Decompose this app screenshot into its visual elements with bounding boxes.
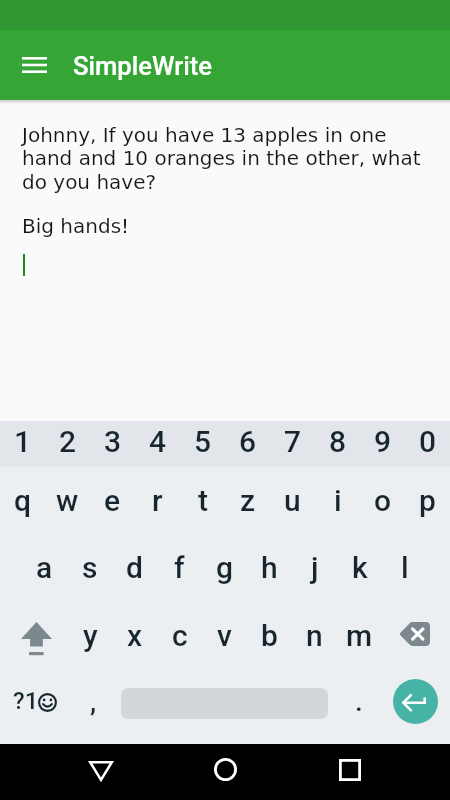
staticText: 9 (374, 424, 392, 459)
staticText: l (401, 550, 409, 585)
staticText: x (127, 618, 143, 653)
staticText: q (14, 483, 31, 518)
staticText: . (355, 685, 363, 718)
button[interactable]: b (247, 603, 292, 671)
staticText: u (284, 483, 301, 518)
button[interactable]: q (0, 467, 45, 535)
button[interactable]: k (337, 535, 382, 603)
staticText: , (90, 685, 97, 718)
staticText: Big hands! (22, 214, 130, 237)
button[interactable]: i (315, 467, 360, 535)
staticText: Johnny, If you have 13 apples in one han… (22, 123, 422, 194)
staticText: 6 (239, 424, 257, 459)
button[interactable]: 9 (360, 421, 405, 467)
button[interactable]: e (90, 467, 135, 535)
button[interactable]: 5 (180, 421, 225, 467)
staticText: 2 (59, 424, 77, 459)
button[interactable]: 6 (225, 421, 270, 467)
staticText: b (261, 618, 278, 653)
button[interactable]: a (22, 535, 67, 603)
button[interactable]: m (337, 603, 382, 671)
staticText: c (172, 618, 188, 653)
staticText: y (83, 618, 98, 653)
staticText: 1 (14, 424, 32, 459)
button[interactable]: w (45, 467, 90, 535)
staticText: j (311, 550, 319, 585)
button[interactable]: Back (66, 744, 136, 800)
button[interactable]: , (72, 671, 116, 744)
button[interactable]: o (360, 467, 405, 535)
staticText: SimpleWrite (73, 51, 213, 81)
button[interactable]: v (202, 603, 247, 671)
staticText: e (104, 483, 121, 518)
button[interactable]: Recent apps (315, 744, 385, 800)
button[interactable]: y (68, 603, 112, 671)
button[interactable]: r (135, 467, 180, 535)
button[interactable]: 3 (90, 421, 135, 467)
staticText: ?1 (13, 687, 39, 715)
staticText: a (36, 550, 53, 585)
button[interactable]: 7 (270, 421, 315, 467)
button[interactable]: . (336, 671, 380, 744)
staticText: f (174, 550, 185, 585)
staticText: k (352, 550, 368, 585)
button[interactable]: Home (190, 744, 260, 800)
button[interactable]: u (270, 467, 315, 535)
button[interactable]: 2 (45, 421, 90, 467)
button[interactable]: h (247, 535, 292, 603)
staticText: r (152, 483, 163, 518)
staticText: v (217, 618, 232, 653)
button[interactable]: Shift (0, 603, 68, 671)
button[interactable]: x (112, 603, 157, 671)
button[interactable]: Enter (393, 679, 438, 724)
staticText: i (334, 483, 342, 518)
button[interactable]: f (157, 535, 202, 603)
button[interactable]: g (202, 535, 247, 603)
staticText: g (216, 550, 234, 585)
staticText: t (198, 483, 208, 518)
button[interactable]: j (292, 535, 337, 603)
button[interactable]: c (157, 603, 202, 671)
staticText: m (346, 618, 373, 653)
staticText: 8 (329, 424, 347, 459)
button[interactable]: Johnny, If you have 13 apples in one han… (0, 104, 450, 421)
button[interactable]: Space (116, 671, 332, 744)
staticText: d (126, 550, 143, 585)
button[interactable]: 1 (0, 421, 45, 467)
staticText: n (306, 618, 323, 653)
button[interactable]: t (180, 467, 225, 535)
staticText: 4 (149, 424, 167, 459)
button[interactable]: Open navigation menu (11, 42, 57, 88)
button[interactable]: p (405, 467, 450, 535)
button[interactable]: 0 (405, 421, 450, 467)
button[interactable]: 8 (315, 421, 360, 467)
staticText: z (240, 483, 256, 518)
button[interactable]: z (225, 467, 270, 535)
button[interactable]: d (112, 535, 157, 603)
button[interactable]: 4 (135, 421, 180, 467)
staticText: 7 (284, 424, 302, 459)
button[interactable]: l (382, 535, 427, 603)
button[interactable]: n (292, 603, 337, 671)
staticText: 5 (194, 424, 212, 459)
button[interactable]: Delete (382, 603, 450, 671)
staticText: 0 (419, 424, 437, 459)
staticText: w (56, 483, 79, 518)
staticText: s (82, 550, 98, 585)
staticText: 3 (104, 424, 122, 459)
button[interactable]: s (67, 535, 112, 603)
staticText: p (419, 483, 436, 518)
button[interactable]: Symbols and emoji (0, 671, 72, 744)
staticText: h (261, 550, 278, 585)
staticText: o (374, 483, 392, 518)
